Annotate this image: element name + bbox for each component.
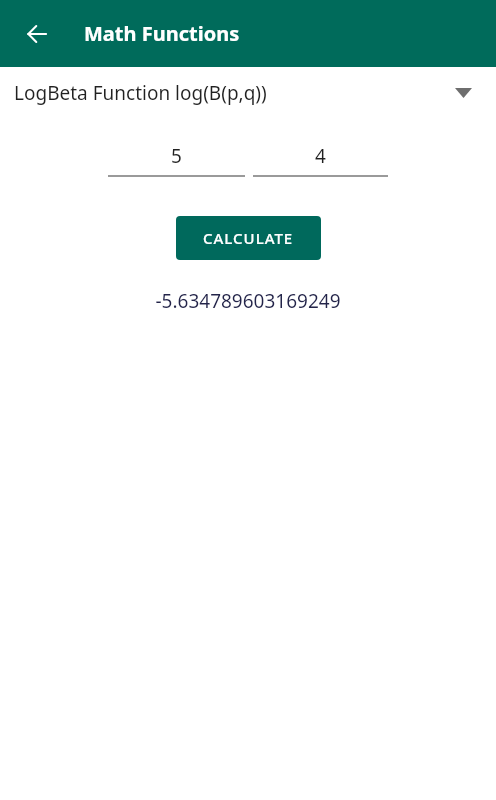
staticText: LogBeta Function log(B(p,q)): [14, 80, 267, 106]
staticText: CALCULATE: [203, 228, 294, 248]
staticText: 5: [171, 143, 182, 169]
staticText: -5.634789603169249: [155, 288, 341, 314]
button[interactable]: LogBeta Function log(B(p,q)): [0, 67, 496, 119]
button[interactable]: 5: [108, 143, 245, 177]
button[interactable]: 4: [253, 143, 388, 177]
staticText: 4: [315, 143, 326, 169]
button[interactable]: Back: [14, 11, 60, 57]
staticText: Math Functions: [84, 20, 240, 47]
button[interactable]: CALCULATE: [176, 216, 321, 260]
